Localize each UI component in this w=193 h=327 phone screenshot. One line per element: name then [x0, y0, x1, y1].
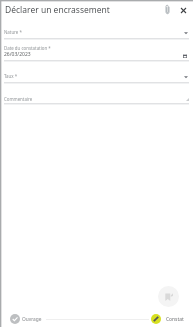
button[interactable]: Close: [175, 2, 192, 19]
staticText: Nature *: [4, 29, 22, 35]
staticText: 26/03/2023: [4, 51, 31, 58]
staticText: Taux *: [4, 73, 18, 79]
button[interactable]: Pick date: [180, 51, 189, 60]
staticText: Commentaire: [4, 96, 33, 102]
staticText: Déclarer un encrassement: [5, 4, 110, 16]
staticText: Ouvrage: [22, 316, 42, 323]
button[interactable]: Open menu: [181, 72, 190, 81]
button[interactable]: Attach file: [159, 0, 175, 19]
staticText: Constat: [166, 316, 184, 323]
button[interactable]: Open menu: [181, 28, 190, 37]
button[interactable]: Déclarer un encrassement: [1, 0, 151, 20]
button[interactable]: Ouvrage: [8, 311, 46, 327]
staticText: Date du constatation *: [4, 45, 51, 51]
button[interactable]: Save: [158, 286, 179, 307]
button[interactable]: Constat: [150, 311, 193, 327]
